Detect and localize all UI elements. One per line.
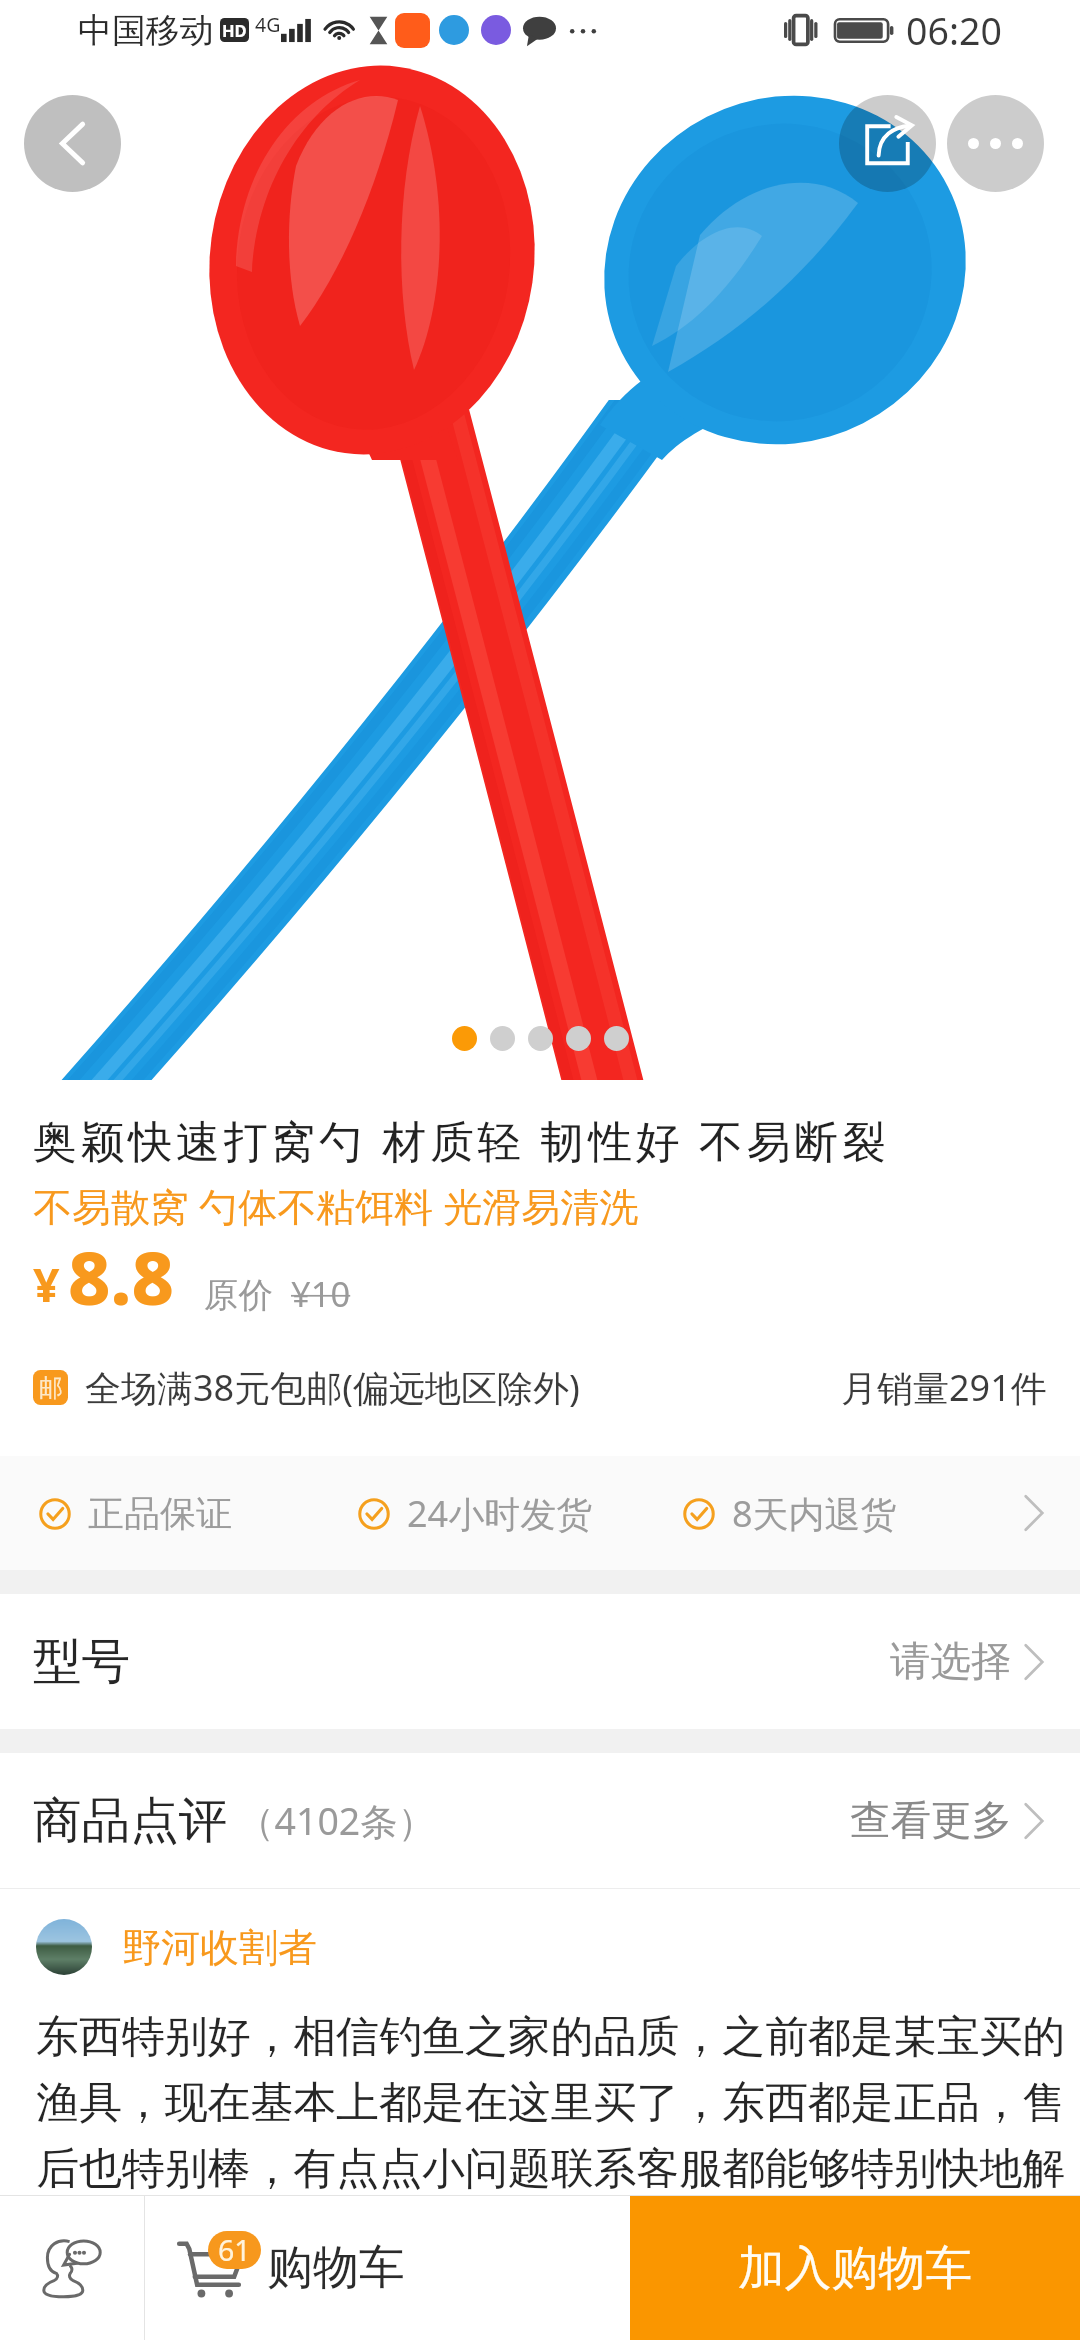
staticText: ¥10 <box>291 1270 351 1317</box>
button[interactable]: Customer service <box>0 2196 144 2340</box>
staticText: ¥ <box>33 1252 60 1315</box>
staticText: 奥颖快速打窝勺 材质轻 韧性好 不易断裂 <box>33 1110 890 1170</box>
button[interactable]: More options <box>947 95 1044 192</box>
staticText: 购物车 <box>267 2239 405 2297</box>
staticText: 型号 <box>33 1631 131 1692</box>
staticText: 商品点评 <box>33 1790 228 1851</box>
staticText: 中国移动 <box>78 9 214 52</box>
staticText: 正品保证 <box>88 1491 232 1536</box>
button[interactable]: 61 <box>145 2196 630 2340</box>
staticText: 请选择 <box>890 1636 1012 1687</box>
button[interactable]: 型号 <box>0 1594 1080 1729</box>
staticText: 61 <box>218 2231 251 2269</box>
staticText: 查看更多 <box>850 1795 1012 1846</box>
button[interactable]: 正品保证 <box>0 1456 1080 1570</box>
staticText: （4102条） <box>237 1795 436 1846</box>
staticText: 全场满38元包邮(偏远地区除外) <box>85 1363 580 1412</box>
button[interactable]: Share <box>839 95 936 192</box>
staticText: 8.8 <box>68 1226 174 1326</box>
staticText: 东西特别好，相信钓鱼之家的品质，之前都是某宝买的渔具，现在基本上都是在这里买了，… <box>36 2010 1068 2196</box>
staticText: HD <box>222 19 247 41</box>
button[interactable]: 商品点评 <box>0 1753 1080 1888</box>
staticText: 加入购物车 <box>738 2239 972 2298</box>
staticText: 不易散窝 勺体不粘饵料 光滑易清洗 <box>33 1179 639 1232</box>
staticText: 月销量291件 <box>841 1363 1047 1412</box>
staticText: 邮 <box>39 1373 63 1403</box>
button[interactable]: 加入购物车 <box>630 2196 1080 2340</box>
staticText: 4G <box>255 11 281 38</box>
staticText: 06:20 <box>906 5 1002 56</box>
staticText: 8天内退货 <box>732 1489 897 1538</box>
staticText: 24小时发货 <box>407 1489 593 1538</box>
button[interactable]: Back <box>24 95 121 192</box>
staticText: 原价 <box>204 1274 273 1317</box>
staticText: 野河收割者 <box>122 1923 317 1972</box>
